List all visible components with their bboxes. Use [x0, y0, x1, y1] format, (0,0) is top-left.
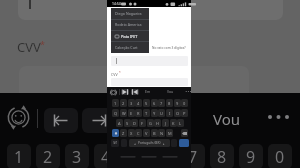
button[interactable]: Backspace: [181, 129, 188, 137]
staticText: 0: [183, 101, 186, 106]
staticText: 14:54: [112, 1, 121, 6]
other: More options: [266, 111, 292, 123]
button[interactable]: G: [147, 119, 154, 127]
button[interactable]: 4: [94, 144, 118, 168]
staticText: Z: [122, 131, 125, 136]
button[interactable]: 9: [174, 99, 181, 107]
staticText: Diego Nogueira: [115, 11, 142, 16]
button[interactable]: 5: [143, 99, 150, 107]
staticText: 4: [101, 146, 111, 168]
staticText: P: [183, 111, 186, 116]
button[interactable]: P: [181, 109, 188, 117]
button[interactable]: Diego Nogueira: [111, 8, 149, 19]
staticText: K: [172, 121, 175, 126]
button[interactable]: !#1: [111, 139, 119, 147]
staticText: 3: [130, 101, 133, 106]
staticText: 1: [14, 146, 24, 168]
button[interactable]: N: [158, 129, 165, 137]
button[interactable]: D: [131, 119, 138, 127]
button[interactable]: 7: [181, 144, 205, 168]
button[interactable]: Shift: [112, 129, 119, 137]
button[interactable]: 1: [7, 144, 31, 168]
button[interactable]: J: [162, 119, 169, 127]
staticText: L: [179, 121, 182, 126]
button[interactable]: 9: [239, 144, 263, 168]
button[interactable]: 2: [120, 99, 127, 107]
button[interactable]: 6: [151, 99, 158, 107]
button[interactable]: L: [177, 119, 184, 127]
staticText: X: [130, 131, 133, 136]
staticText: G: [149, 121, 152, 126]
button[interactable]: Q: [112, 109, 119, 117]
staticText: 3: [72, 146, 82, 168]
staticText: Vou: [213, 109, 241, 129]
button[interactable]: O: [174, 109, 181, 117]
button[interactable]: Pista IFET: [111, 31, 149, 42]
staticText: 4: [137, 101, 140, 106]
staticText: C: [137, 131, 140, 136]
button[interactable]: F: [139, 119, 146, 127]
staticText: D: [133, 121, 136, 126]
button[interactable]: R: [135, 109, 142, 117]
button[interactable]: Cabeção Curt: [111, 42, 149, 53]
button[interactable]: 3: [128, 99, 135, 107]
staticText: 8: [168, 101, 171, 106]
button[interactable]: S: [124, 119, 131, 127]
button[interactable]: 1: [112, 99, 119, 107]
staticText: 9: [176, 101, 179, 106]
button[interactable]: Y: [151, 109, 158, 117]
button[interactable]: A: [116, 119, 123, 127]
button[interactable]: I: [166, 109, 173, 117]
staticText: U: [160, 111, 163, 116]
staticText: Pista IFET: [121, 34, 138, 39]
staticText: Vou: [167, 89, 174, 94]
staticText: CVV: [111, 72, 118, 77]
button[interactable]: X: [128, 129, 135, 137]
button[interactable]: E: [128, 109, 135, 117]
staticText: 1: [114, 101, 117, 106]
other: Emoji: [110, 89, 117, 96]
staticText: I: [169, 111, 171, 116]
button[interactable]: 3: [65, 144, 89, 168]
staticText: Português (BR): [138, 141, 161, 145]
button[interactable]: U: [158, 109, 165, 117]
other: Emoji: [7, 106, 30, 129]
button[interactable]: Undo: [131, 89, 139, 95]
button[interactable]: Rodeio America: [111, 19, 149, 30]
button[interactable]: 6: [152, 144, 176, 168]
button[interactable]: 0: [268, 144, 292, 168]
button[interactable]: 5: [123, 144, 147, 168]
staticText: R: [137, 111, 140, 116]
button[interactable]: 0: [181, 99, 188, 107]
button[interactable]: C: [135, 129, 142, 137]
button[interactable]: Enter: [179, 139, 189, 147]
staticText: 0: [275, 146, 285, 168]
button[interactable]: K: [170, 119, 177, 127]
staticText: 7: [188, 146, 198, 168]
button[interactable]: 4: [135, 99, 142, 107]
staticText: V: [145, 131, 148, 136]
button[interactable]: T: [143, 109, 150, 117]
button[interactable]: H: [154, 119, 161, 127]
staticText: M: [168, 131, 172, 136]
button[interactable]: Next: [82, 108, 116, 133]
button[interactable]: 8: [166, 99, 173, 107]
staticText: F: [141, 121, 144, 126]
button[interactable]: M: [166, 129, 173, 137]
button[interactable]: 7: [158, 99, 165, 107]
staticText: T: [145, 111, 148, 116]
button[interactable]: Previous: [44, 108, 78, 133]
button[interactable]: W: [120, 109, 127, 117]
staticText: O: [176, 111, 180, 116]
staticText: *: [40, 38, 45, 50]
button[interactable]: Z: [120, 129, 127, 137]
button[interactable]: 8: [210, 144, 234, 168]
button[interactable]: ◂: [129, 139, 170, 147]
button[interactable]: V: [143, 129, 150, 137]
button[interactable]: B: [151, 129, 158, 137]
staticText: Y: [153, 111, 156, 116]
button[interactable]: 2: [36, 144, 60, 168]
button[interactable]: Redo: [121, 89, 129, 95]
